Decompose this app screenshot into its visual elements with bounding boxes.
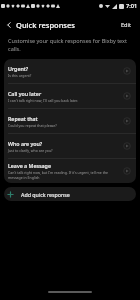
button[interactable]: Edit <box>119 18 134 32</box>
button[interactable]: Who are you? <box>4 134 136 158</box>
staticText: Edit <box>121 21 132 29</box>
staticText: Urgent? <box>8 65 29 72</box>
button[interactable]: Leave a Message <box>4 159 136 183</box>
staticText: Repeat that <box>8 115 38 122</box>
button[interactable]: Call you later <box>4 84 136 108</box>
staticText: Call you later <box>8 90 42 97</box>
button[interactable]: Back <box>3 19 15 31</box>
staticText: Who are you? <box>8 140 43 147</box>
staticText: Customise your quick responses for Bixby… <box>8 37 128 53</box>
staticText: 7:01 <box>126 2 138 10</box>
button[interactable]: Repeat that <box>4 109 136 133</box>
staticText: Can't talk right now, but I'm reading. I… <box>8 170 119 180</box>
staticText: Leave a Message <box>8 162 51 169</box>
staticText: Just to clarify, who are you? <box>8 148 53 153</box>
button[interactable]: Urgent? <box>4 59 136 83</box>
staticText: Is this urgent? <box>8 73 32 78</box>
button[interactable]: Play <box>121 140 133 152</box>
button[interactable]: Play <box>121 165 133 177</box>
staticText: Add quick response <box>21 191 70 198</box>
button[interactable]: Play <box>121 90 133 102</box>
staticText: Could you repeat that please? <box>8 123 57 128</box>
staticText: I can't talk right now, I'll call you ba… <box>8 98 78 103</box>
button[interactable]: Play <box>121 115 133 127</box>
button[interactable]: Add quick response <box>4 187 136 201</box>
staticText: Quick responses <box>16 20 75 30</box>
button[interactable]: Play <box>121 65 133 77</box>
